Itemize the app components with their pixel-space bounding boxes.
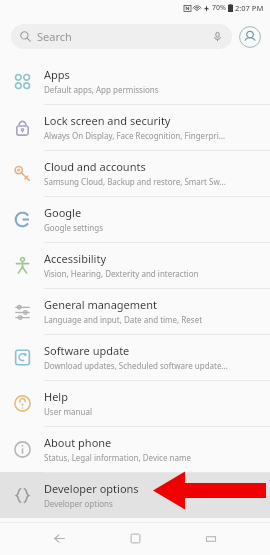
staticText: Default apps, App permissions: [44, 84, 159, 95]
staticText: General management: [44, 297, 158, 312]
staticText: 2:07 PM: [235, 3, 264, 13]
staticText: Apps: [44, 67, 70, 82]
staticText: Help: [44, 389, 68, 404]
staticText: Google settings: [44, 222, 103, 233]
staticText: Search: [37, 29, 72, 44]
button[interactable]: Back: [42, 522, 76, 555]
other: Voice search: [212, 31, 223, 42]
staticText: 70%: [212, 3, 226, 13]
button[interactable]: Apps: [0, 58, 270, 104]
staticText: Developer options: [44, 481, 139, 496]
staticText: Samsung Cloud, Backup and restore, Smart…: [44, 176, 226, 187]
staticText: Status, Legal information, Device name: [44, 452, 191, 463]
staticText: Cloud and accounts: [44, 159, 146, 174]
staticText: Lock screen and security: [44, 113, 171, 128]
staticText: Always On Display, Face Recognition, Fin…: [44, 130, 226, 141]
staticText: About phone: [44, 435, 112, 450]
staticText: Language and input, Date and time, Reset: [44, 314, 203, 325]
button[interactable]: Software update: [0, 334, 270, 380]
staticText: Download updates, Scheduled software upd…: [44, 360, 228, 371]
button[interactable]: Google: [0, 196, 270, 242]
staticText: Google: [44, 205, 82, 220]
staticText: Software update: [44, 343, 130, 358]
button[interactable]: Account: [238, 25, 262, 49]
staticText: Accessibility: [44, 251, 107, 266]
button[interactable]: Search: [11, 24, 232, 49]
staticText: Developer options: [44, 498, 113, 509]
button[interactable]: General management: [0, 288, 270, 334]
button[interactable]: Recents: [194, 522, 228, 555]
button[interactable]: Home: [118, 522, 152, 555]
button[interactable]: Cloud and accounts: [0, 150, 270, 196]
button[interactable]: Developer options: [0, 472, 270, 518]
button[interactable]: Help: [0, 380, 270, 426]
button[interactable]: Lock screen and security: [0, 104, 270, 150]
button[interactable]: About phone: [0, 426, 270, 472]
staticText: User manual: [44, 406, 92, 417]
staticText: Vision, Hearing, Dexterity and interacti…: [44, 268, 199, 279]
button[interactable]: Accessibility: [0, 242, 270, 288]
